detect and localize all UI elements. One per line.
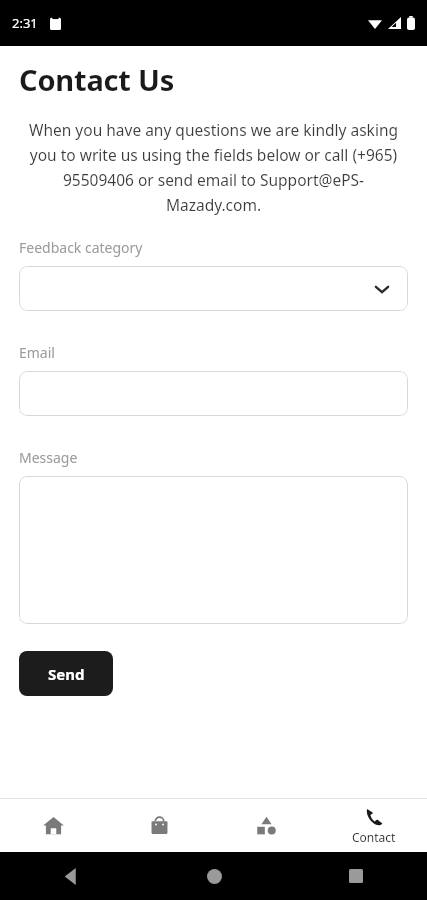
staticText: Contact	[352, 829, 396, 845]
button[interactable]: Message	[19, 476, 408, 624]
button[interactable]: Send	[19, 651, 113, 696]
staticText: Contact Us	[19, 60, 175, 99]
staticText: When you have any questions we are kindl…	[16, 119, 411, 215]
staticText: Message	[19, 448, 78, 467]
staticText: Feedback category	[19, 238, 143, 257]
staticText: 2:31	[12, 14, 38, 32]
button[interactable]: Contact	[320, 799, 427, 852]
staticText: Send	[48, 664, 85, 684]
button[interactable]: Categories	[213, 799, 320, 852]
button[interactable]: Shop	[106, 799, 213, 852]
button[interactable]: Home	[0, 799, 106, 852]
button[interactable]: Email	[19, 371, 408, 416]
staticText: Email	[19, 343, 55, 362]
button[interactable]: Feedback category	[19, 266, 408, 311]
